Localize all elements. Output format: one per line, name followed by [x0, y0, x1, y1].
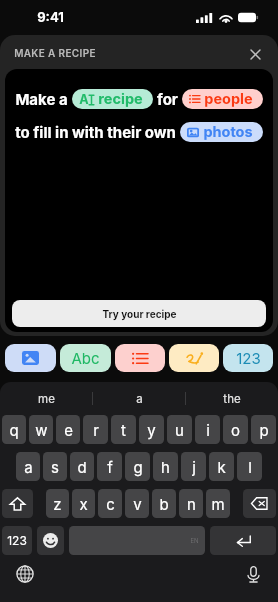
button[interactable]: Backspace [243, 489, 276, 518]
other: Insert photo [22, 351, 39, 365]
button[interactable]: me [0, 382, 92, 415]
staticText: for [157, 90, 178, 108]
button[interactable]: A [72, 89, 153, 109]
button[interactable]: r [83, 415, 108, 444]
staticText: g [133, 458, 143, 476]
staticText: 9:41 [37, 9, 64, 25]
button[interactable]: h [153, 452, 178, 481]
button[interactable]: o [223, 415, 248, 444]
staticText: z [53, 495, 62, 513]
button[interactable]: i [195, 415, 220, 444]
button[interactable]: 123 [2, 526, 32, 555]
button[interactable]: g [125, 452, 150, 481]
staticText: a [24, 458, 33, 476]
button[interactable]: Insert photo [5, 344, 56, 372]
button[interactable]: Abc [60, 344, 111, 372]
other: Draw [186, 351, 203, 366]
button[interactable]: v [125, 489, 149, 518]
staticText: w [35, 421, 48, 439]
staticText: l [248, 458, 252, 476]
staticText: d [77, 458, 87, 476]
button[interactable]: u [167, 415, 192, 444]
button[interactable]: Return [210, 526, 276, 555]
staticText: r [93, 421, 99, 439]
staticText: A [79, 92, 89, 107]
button[interactable]: x [72, 489, 95, 518]
staticText: a [136, 392, 143, 406]
staticText: recipe [98, 90, 143, 108]
staticText: people [204, 90, 253, 108]
staticText: s [51, 458, 59, 476]
button[interactable]: m [206, 489, 230, 518]
staticText: EN [190, 537, 199, 544]
staticText: t [121, 421, 126, 439]
staticText: 123 [7, 533, 27, 548]
staticText: y [147, 421, 156, 439]
staticText: u [175, 421, 184, 439]
button[interactable]: a [93, 382, 185, 415]
button[interactable]: Try your recipe [12, 300, 266, 327]
staticText: j [192, 458, 196, 476]
button[interactable]: s [43, 452, 67, 481]
button[interactable]: k [209, 452, 234, 481]
button[interactable]: b [152, 489, 176, 518]
button[interactable]: Dictate [242, 563, 264, 585]
button[interactable]: Space [69, 526, 205, 555]
button[interactable]: c [98, 489, 122, 518]
other: Insert list [132, 352, 148, 365]
staticText: Abc [71, 349, 100, 367]
staticText: to fill in with their own [15, 123, 176, 141]
button[interactable]: Insert list [115, 344, 165, 372]
staticText: c [106, 495, 115, 513]
button[interactable]: j [181, 452, 206, 481]
button[interactable]: y [139, 415, 164, 444]
button[interactable]: t [111, 415, 136, 444]
staticText: n [187, 495, 196, 513]
button[interactable]: a [16, 452, 40, 481]
button[interactable]: the [186, 382, 278, 415]
button[interactable]: l [237, 452, 262, 481]
staticText: photos [203, 123, 253, 141]
button[interactable]: photos [180, 122, 263, 142]
button[interactable]: d [70, 452, 94, 481]
button[interactable]: Switch keyboard [14, 563, 36, 585]
staticText: e [64, 421, 73, 439]
button[interactable]: 123 [223, 344, 273, 372]
staticText: Try your recipe [102, 308, 177, 320]
staticText: p [259, 421, 269, 439]
button[interactable]: people [182, 89, 263, 109]
staticText: me [38, 392, 55, 406]
button[interactable]: f [97, 452, 122, 481]
staticText: m [211, 495, 225, 513]
staticText: v [133, 495, 142, 513]
button[interactable]: Draw [169, 344, 219, 372]
staticText: h [161, 458, 170, 476]
staticText: x [79, 495, 88, 513]
staticText: f [107, 458, 113, 476]
button[interactable]: e [56, 415, 80, 444]
button[interactable]: Emoji [37, 526, 64, 555]
button[interactable]: n [179, 489, 203, 518]
button[interactable]: p [251, 415, 276, 444]
staticText: q [9, 421, 19, 439]
button[interactable]: Shift [2, 489, 33, 518]
staticText: MAKE A RECIPE [14, 47, 96, 59]
staticText: b [159, 495, 169, 513]
staticText: o [231, 421, 240, 439]
staticText: Make a [15, 90, 68, 108]
button[interactable]: z [46, 489, 69, 518]
staticText: k [217, 458, 226, 476]
button[interactable]: w [29, 415, 53, 444]
button[interactable]: q [2, 415, 26, 444]
staticText: the [223, 392, 241, 406]
button[interactable]: Close [244, 43, 266, 65]
staticText: i [206, 421, 210, 439]
staticText: 123 [236, 349, 261, 367]
